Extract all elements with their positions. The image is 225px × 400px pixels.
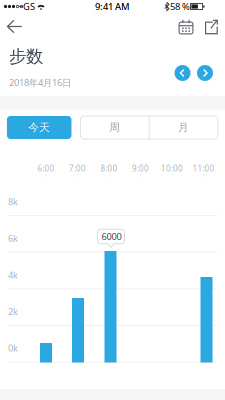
staticText: 2018年4月16日 (9, 76, 71, 89)
staticText: 步数 (9, 46, 43, 67)
staticText: 10:00 (161, 163, 183, 174)
staticText: 6000 (101, 230, 121, 243)
button[interactable]: Previous day (174, 65, 190, 81)
staticText: 4k (8, 269, 18, 281)
staticText: GS (23, 0, 35, 13)
staticText: 6k (8, 232, 18, 244)
staticText: 月 (178, 121, 189, 134)
staticText: 8:00 (100, 163, 117, 174)
staticText: 9:41 AM (95, 0, 130, 13)
button[interactable]: Share (199, 15, 222, 38)
staticText: 8k (8, 195, 18, 208)
button[interactable]: Calendar (174, 15, 197, 38)
button[interactable]: 今天 (7, 116, 71, 139)
staticText: 周 (109, 121, 120, 134)
staticText: 今天 (28, 121, 50, 134)
staticText: 2k (8, 305, 18, 318)
staticText: 0k (8, 342, 18, 354)
button[interactable]: 月 (150, 116, 217, 139)
button[interactable]: 周 (81, 116, 148, 139)
staticText: 58 % (170, 0, 190, 13)
staticText: 9:00 (132, 163, 149, 174)
staticText: 11:00 (192, 163, 214, 174)
staticText: 6:00 (37, 163, 54, 174)
button[interactable]: Back (1, 14, 27, 38)
staticText: 7:00 (69, 163, 86, 174)
button[interactable]: Next day (197, 65, 213, 81)
